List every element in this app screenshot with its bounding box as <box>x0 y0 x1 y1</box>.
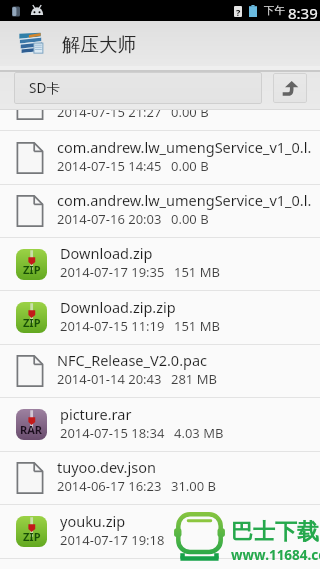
staticText: 2014-06-17 16:23 <box>57 477 162 495</box>
button[interactable]: com.andrew.lw_umengService_v1_0.l. <box>0 131 320 184</box>
staticText: NFC_Release_V2.0.pac <box>57 350 208 370</box>
staticText: 2014-07-15 14:45 <box>57 157 162 175</box>
staticText: 2014-07-15 11:19 <box>60 317 165 335</box>
button[interactable]: ZIP <box>0 238 320 290</box>
button[interactable]: SD卡 <box>14 72 262 104</box>
staticText: ? <box>236 6 241 17</box>
staticText: 281 MB <box>171 370 217 388</box>
staticText: ZIP <box>23 529 41 544</box>
button[interactable]: com.andrew.lw_umengService_v1_0.l. <box>0 110 320 130</box>
staticText: ZIP <box>23 315 41 330</box>
button[interactable]: ZIP <box>0 505 320 558</box>
button[interactable]: NFC_Release_V2.0.pac <box>0 345 320 397</box>
staticText: tuyoo.dev.json <box>57 457 156 477</box>
staticText: 151 MB <box>174 317 220 335</box>
button[interactable]: Up one level <box>273 73 307 103</box>
button[interactable]: RAR <box>0 398 320 451</box>
staticText: www.11684.com <box>231 546 320 564</box>
staticText: 2014-07-15 21:27 <box>57 110 162 121</box>
staticText: com.andrew.lw_umengService_v1_0.l. <box>57 190 312 210</box>
staticText: 2014-07-16 20:03 <box>57 210 162 228</box>
staticText: 下午 <box>264 4 285 17</box>
staticText: 0.00 B <box>171 210 209 228</box>
staticText: youku.zip <box>60 511 126 531</box>
staticText: 巴士下载 <box>231 518 319 546</box>
staticText: com.andrew.lw_umengService_v1_0.l. <box>57 137 312 157</box>
staticText: 2014-07-17 19:35 <box>60 263 165 281</box>
staticText: 0.00 B <box>171 157 209 175</box>
staticText: 151 MB <box>174 263 220 281</box>
staticText: SD卡 <box>29 79 60 97</box>
staticText: 4.03 MB <box>174 424 224 442</box>
staticText: 解压大师 <box>62 33 136 56</box>
button[interactable]: ZIP <box>0 291 320 344</box>
staticText: Download.zip.zip <box>60 297 176 317</box>
staticText: 8:39 <box>288 3 318 23</box>
staticText: 0.00 B <box>171 110 209 121</box>
button[interactable]: com.andrew.lw_umengService_v1_0.l. <box>0 185 320 237</box>
staticText: 2014-07-17 19:18 <box>60 531 165 549</box>
staticText: 31.00 B <box>171 477 217 495</box>
staticText: Download.zip <box>60 243 153 263</box>
staticText: ZIP <box>23 262 41 277</box>
staticText: RAR <box>20 422 43 437</box>
button[interactable]: tuyoo.dev.json <box>0 451 320 504</box>
staticText: picture.rar <box>60 404 132 424</box>
staticText: 2014-01-14 20:43 <box>57 370 162 388</box>
staticText: 2014-07-15 18:34 <box>60 424 165 442</box>
